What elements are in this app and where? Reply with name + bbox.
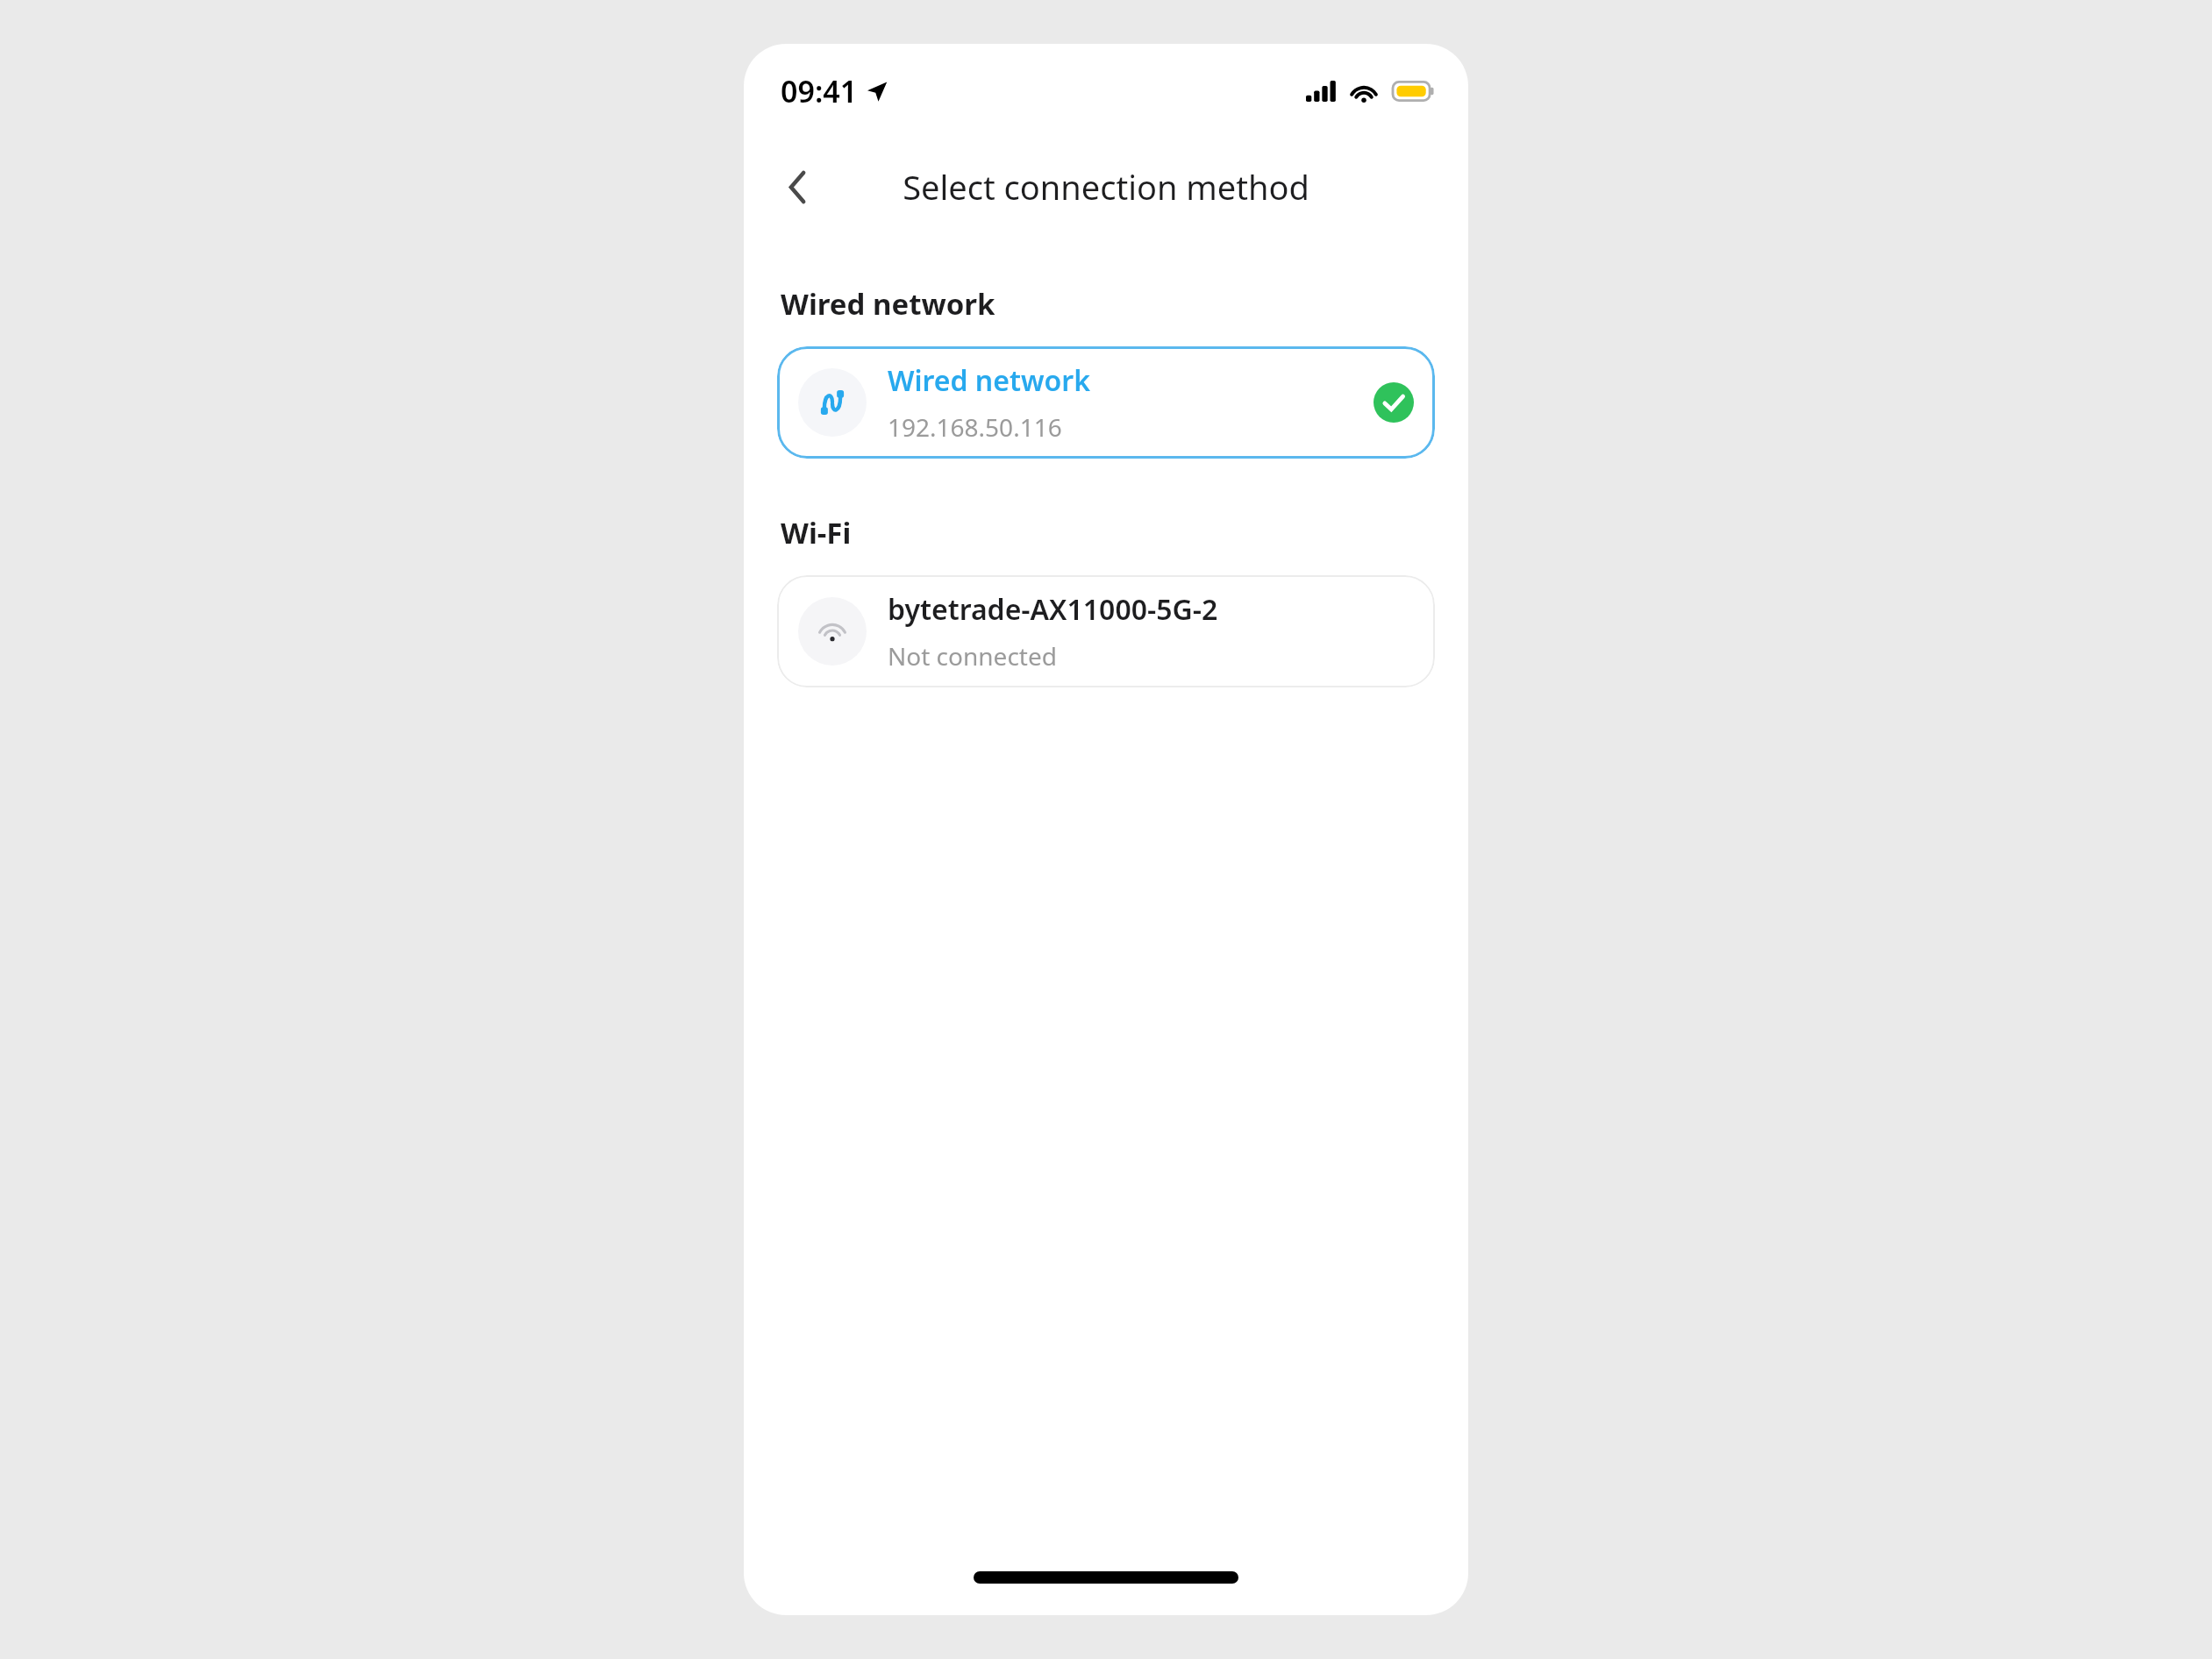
staticText: bytetrade-AX11000-5G-2 bbox=[888, 590, 1218, 629]
staticText: Wired network bbox=[781, 284, 995, 324]
staticText: Wi-Fi bbox=[781, 513, 852, 552]
staticText: Select connection method bbox=[903, 164, 1309, 210]
button[interactable]: bytetrade-AX11000-5G-2 bbox=[777, 575, 1435, 687]
button[interactable]: Back bbox=[765, 154, 830, 219]
button[interactable]: Wired network bbox=[777, 346, 1435, 459]
staticText: 09:41 bbox=[781, 71, 858, 111]
staticText: Not connected bbox=[888, 639, 1057, 673]
staticText: Wired network bbox=[888, 361, 1091, 400]
staticText: 192.168.50.116 bbox=[888, 410, 1062, 444]
